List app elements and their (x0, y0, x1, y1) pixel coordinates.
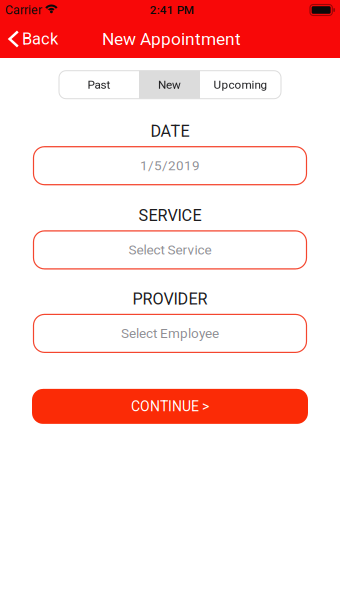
button[interactable]: Back (0, 20, 68, 58)
staticText: DATE (150, 122, 189, 141)
button[interactable]: Upcoming (200, 71, 281, 99)
staticText: Past (87, 78, 110, 91)
staticText: Select Service (128, 242, 211, 258)
staticText: Carrier (5, 3, 42, 17)
button[interactable]: 1/5/2019 (33, 147, 306, 185)
staticText: SERVICE (138, 206, 201, 225)
button[interactable]: Past (59, 71, 139, 99)
button[interactable]: Select Employee (33, 314, 306, 352)
staticText: Upcoming (213, 78, 267, 91)
staticText: PROVIDER (132, 289, 207, 308)
staticText: New Appointment (102, 29, 241, 49)
staticText: 2:41 PM (150, 3, 194, 17)
staticText: 1/5/2019 (140, 158, 200, 174)
staticText: CONTINUE > (131, 398, 209, 415)
staticText: Back (22, 29, 58, 49)
button[interactable]: CONTINUE > (32, 389, 308, 424)
button[interactable]: Select Service (33, 231, 306, 269)
staticText: Select Employee (121, 325, 219, 341)
button[interactable]: New (139, 71, 200, 99)
staticText: New (158, 78, 181, 91)
